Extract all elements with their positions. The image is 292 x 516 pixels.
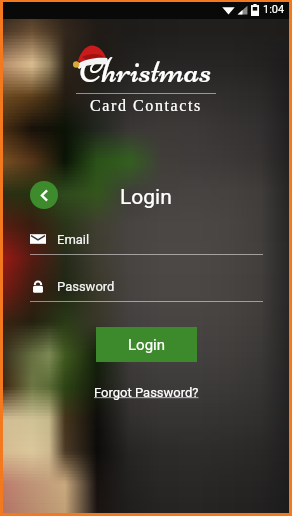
button[interactable]: Forgot Password? — [92, 384, 201, 401]
button[interactable]: Login — [96, 327, 197, 362]
staticText: Forgot Password? — [94, 385, 199, 400]
staticText: Login — [128, 336, 165, 354]
staticText: Card Contacts — [90, 97, 202, 112]
staticText: Email — [57, 232, 90, 247]
staticText: 1:04 — [263, 3, 285, 16]
button[interactable]: Back — [30, 181, 58, 209]
staticText: Christmas — [80, 48, 212, 93]
staticText: Login — [120, 185, 172, 210]
staticText: Password — [57, 279, 115, 294]
